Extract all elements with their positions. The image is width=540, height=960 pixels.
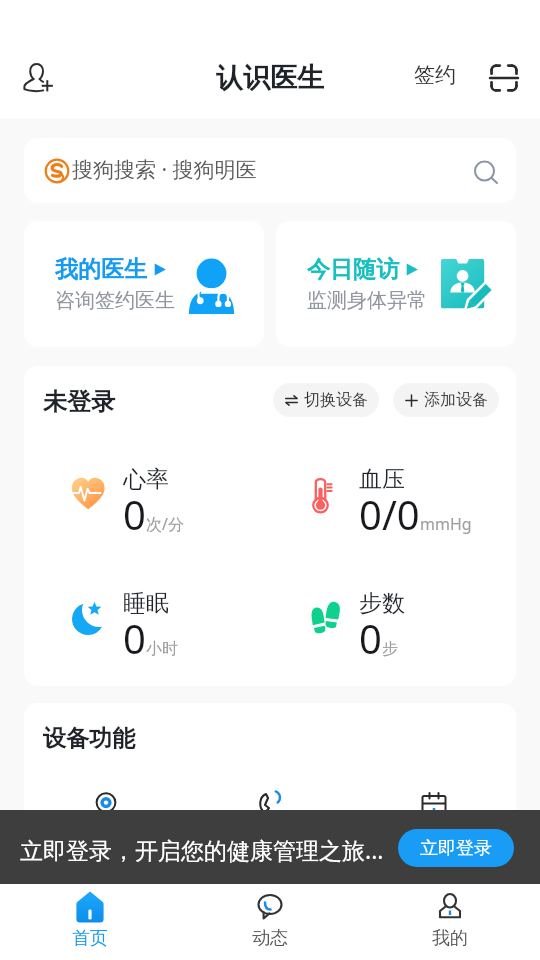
staticText: 步 bbox=[382, 639, 398, 659]
staticText: 步数 bbox=[359, 589, 405, 618]
staticText: 次/分 bbox=[146, 513, 184, 535]
staticText: 0/0 bbox=[359, 487, 420, 541]
staticText: 签约 bbox=[414, 62, 456, 88]
staticText: 0 bbox=[359, 611, 382, 665]
staticText: 睡眠 bbox=[123, 589, 169, 618]
button[interactable]: 通话 bbox=[188, 788, 352, 849]
button[interactable]: 日程 bbox=[352, 788, 516, 849]
staticText: 我的 bbox=[432, 927, 468, 950]
staticText: 首页 bbox=[72, 927, 108, 950]
button[interactable]: 血压 bbox=[306, 465, 472, 548]
button[interactable]: 搜狗搜索 · 搜狗明医 bbox=[24, 138, 516, 203]
button[interactable]: Add friend bbox=[8, 48, 56, 96]
staticText: 0 bbox=[123, 611, 146, 665]
staticText: 设备功能 bbox=[43, 724, 135, 753]
button[interactable]: 切换设备 bbox=[273, 383, 379, 417]
staticText: 小时 bbox=[146, 639, 178, 659]
staticText: 血压 bbox=[359, 465, 405, 494]
button[interactable]: 添加设备 bbox=[393, 383, 499, 417]
staticText: 咨询签约医生 bbox=[55, 288, 175, 313]
staticText: 我的医生 bbox=[55, 255, 147, 284]
button[interactable]: 今日随访 bbox=[276, 221, 516, 347]
button[interactable]: 睡眠 bbox=[70, 589, 178, 672]
button[interactable]: 定位 bbox=[24, 788, 188, 849]
button[interactable]: Scan QR code bbox=[478, 52, 526, 100]
staticText: 认识医生 bbox=[216, 61, 324, 95]
staticText: 切换设备 bbox=[304, 390, 368, 410]
staticText: 监测身体异常 bbox=[307, 288, 427, 313]
button[interactable]: 首页 bbox=[0, 884, 180, 957]
staticText: 动态 bbox=[252, 927, 288, 950]
staticText: 添加设备 bbox=[424, 390, 488, 410]
staticText: 定位 bbox=[89, 828, 123, 849]
staticText: 心率 bbox=[123, 465, 169, 494]
staticText: mmHg bbox=[420, 513, 472, 535]
staticText: 今日随访 bbox=[307, 255, 399, 284]
staticText: 通话 bbox=[253, 828, 287, 849]
button[interactable]: 我的 bbox=[360, 884, 540, 957]
button[interactable]: 我的医生 bbox=[24, 221, 264, 347]
button[interactable]: 动态 bbox=[180, 884, 360, 957]
button[interactable]: 立即登录 bbox=[398, 829, 514, 867]
button[interactable]: 签约 bbox=[408, 58, 462, 92]
staticText: 日程 bbox=[417, 828, 451, 849]
staticText: 搜狗搜索 · 搜狗明医 bbox=[72, 155, 257, 184]
button[interactable]: 步数 bbox=[306, 589, 405, 672]
staticText: 未登录 bbox=[43, 387, 115, 417]
staticText: 立即登录 bbox=[420, 837, 492, 860]
staticText: 0 bbox=[123, 487, 146, 541]
staticText: 立即登录，开启您的健康管理之旅... bbox=[20, 834, 392, 865]
button[interactable]: 心率 bbox=[70, 465, 184, 548]
